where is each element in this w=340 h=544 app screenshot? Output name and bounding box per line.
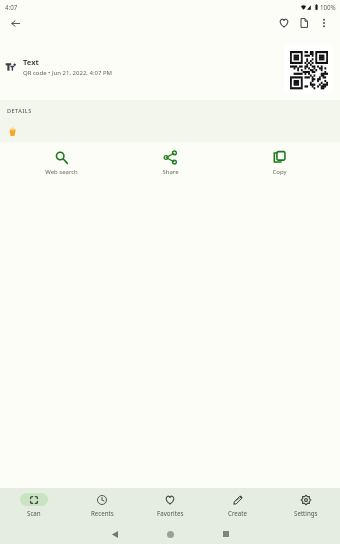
staticText: Recents: [91, 509, 114, 517]
button[interactable]: Web search: [6, 142, 116, 176]
button[interactable]: Copy: [225, 142, 334, 176]
staticText: 4:07: [5, 3, 18, 11]
staticText: Settings: [294, 509, 318, 517]
button[interactable]: Favorite: [272, 14, 296, 32]
button[interactable]: Favorites: [136, 488, 204, 517]
staticText: Text: [23, 57, 39, 67]
button[interactable]: Settings: [272, 488, 340, 517]
button[interactable]: Back: [103, 524, 127, 544]
button[interactable]: Export file: [292, 14, 316, 32]
staticText: Share: [162, 168, 179, 176]
staticText: Web search: [45, 168, 78, 176]
button[interactable]: Home: [158, 524, 182, 544]
button[interactable]: Create: [204, 488, 272, 517]
staticText: Copy: [272, 168, 287, 176]
button[interactable]: More options: [312, 14, 336, 32]
button[interactable]: Scan: [0, 488, 68, 517]
staticText: Favorites: [157, 509, 184, 517]
staticText: 100%: [320, 3, 336, 11]
button[interactable]: Share: [116, 142, 225, 176]
button[interactable]: Recents: [68, 488, 136, 517]
button[interactable]: Navigate up: [3, 14, 27, 32]
staticText: Create: [228, 509, 248, 517]
staticText: Scan: [27, 509, 41, 517]
staticText: QR code • Jun 21, 2022, 4:07 PM: [23, 69, 113, 77]
button[interactable]: Recent apps: [214, 524, 238, 544]
staticText: DETAILS: [7, 107, 32, 115]
